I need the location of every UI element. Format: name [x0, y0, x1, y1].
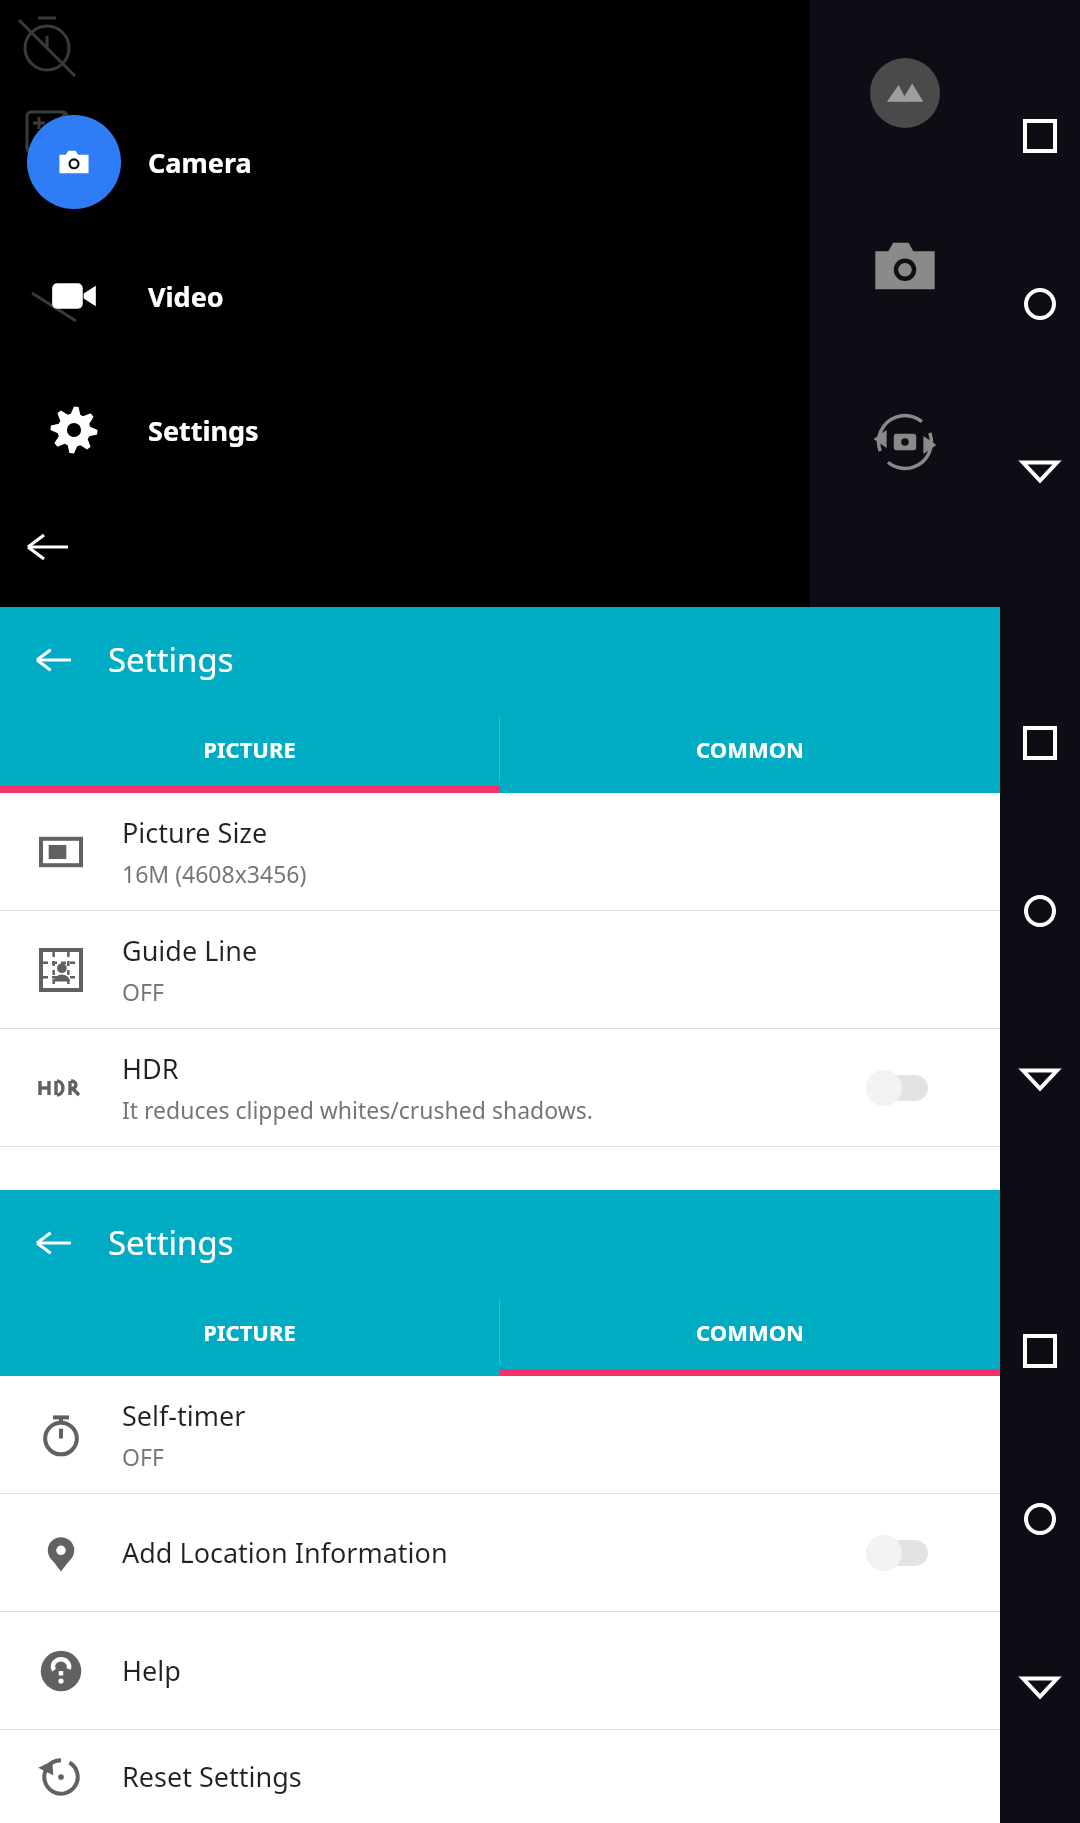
staticText: Self-timer — [122, 1397, 246, 1434]
staticText: Settings — [148, 412, 259, 449]
button[interactable]: Back — [1008, 1047, 1072, 1111]
staticText: COMMON — [696, 1317, 804, 1347]
button[interactable]: Self-timer — [0, 1376, 1000, 1493]
button[interactable]: COMMON — [500, 712, 1000, 786]
button[interactable]: Recents — [1008, 104, 1072, 168]
button[interactable]: Add Location Information — [0, 1494, 1000, 1611]
button[interactable]: Back — [26, 632, 82, 688]
staticText: Guide Line — [122, 932, 258, 969]
button[interactable]: Guide Line — [0, 911, 1000, 1028]
staticText: Add Location Information — [122, 1534, 448, 1571]
button[interactable]: Home — [1008, 1487, 1072, 1551]
staticText: It reduces clipped whites/crushed shadow… — [122, 1094, 593, 1125]
button[interactable]: PICTURE — [0, 1295, 499, 1369]
staticText: PICTURE — [203, 734, 296, 764]
staticText: Video — [148, 278, 224, 315]
button[interactable]: Video — [0, 249, 1000, 343]
button[interactable]: Back — [18, 517, 78, 577]
staticText: HDR — [122, 1050, 179, 1087]
staticText: Settings — [108, 1220, 234, 1265]
button[interactable]: COMMON — [500, 1295, 1000, 1369]
button[interactable]: Add Location Information — [866, 1523, 950, 1583]
staticText: Reset Settings — [122, 1758, 302, 1795]
button[interactable]: Settings — [0, 383, 1000, 477]
staticText: Help — [122, 1652, 181, 1689]
button[interactable]: PICTURE — [0, 712, 499, 786]
button[interactable]: Recents — [1008, 711, 1072, 775]
button[interactable]: Home — [1008, 272, 1072, 336]
staticText: OFF — [122, 1441, 164, 1472]
button[interactable]: HDR — [0, 1029, 1000, 1146]
button[interactable]: Home — [1008, 879, 1072, 943]
button[interactable]: Picture Size — [0, 793, 1000, 910]
staticText: OFF — [122, 976, 164, 1007]
staticText: Camera — [148, 144, 252, 181]
button[interactable]: Back — [1008, 1655, 1072, 1719]
staticText: Picture Size — [122, 814, 268, 851]
button[interactable]: Recents — [1008, 1319, 1072, 1383]
button[interactable]: Back — [1008, 439, 1072, 503]
button[interactable]: Camera — [0, 115, 1000, 209]
button[interactable]: Reset Settings — [0, 1730, 1000, 1823]
staticText: Settings — [108, 637, 234, 682]
button[interactable]: Gallery — [870, 58, 940, 128]
button[interactable]: Shutter — [867, 228, 943, 304]
staticText: 16M (4608x3456) — [122, 858, 307, 889]
button[interactable]: Switch camera — [867, 404, 943, 480]
button[interactable]: Back — [26, 1215, 82, 1271]
button[interactable]: Help — [0, 1612, 1000, 1729]
staticText: COMMON — [696, 734, 804, 764]
button[interactable]: HDR — [866, 1058, 950, 1118]
staticText: PICTURE — [203, 1317, 296, 1347]
